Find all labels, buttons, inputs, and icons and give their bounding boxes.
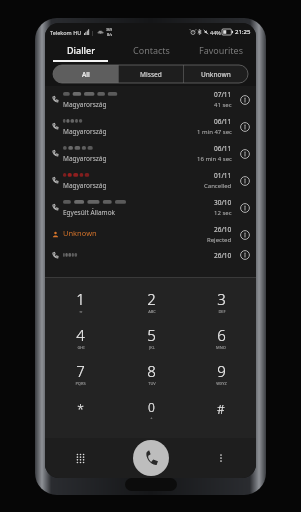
staticText: 07/11 xyxy=(214,90,232,99)
staticText: All xyxy=(82,70,90,79)
button[interactable]: * xyxy=(45,391,116,427)
staticText: 12 sec xyxy=(214,209,232,217)
button[interactable]: 5 xyxy=(116,319,186,355)
staticText: 21:25 xyxy=(235,28,251,36)
staticText: 01/11 xyxy=(214,171,232,180)
button[interactable]: Contacts xyxy=(116,40,186,60)
staticText: 06/11 xyxy=(214,117,232,126)
staticText: 1 xyxy=(76,289,85,309)
button[interactable]: Magyarország xyxy=(45,140,256,167)
staticText: JKL xyxy=(149,345,155,350)
staticText: PQRS xyxy=(75,381,86,386)
button[interactable]: Call details xyxy=(238,93,252,107)
button[interactable]: 6 xyxy=(186,319,256,355)
staticText: WXYZ xyxy=(216,381,227,386)
staticText: ∞ xyxy=(79,309,83,314)
staticText: Magyarország xyxy=(63,154,107,163)
staticText: Unknown xyxy=(63,228,97,238)
button[interactable]: Unknown xyxy=(45,221,256,248)
button[interactable]: 1 xyxy=(45,283,116,319)
button[interactable]: # xyxy=(186,391,256,427)
staticText: Rejected xyxy=(207,236,232,244)
staticText: 16 min 4 sec xyxy=(197,155,232,163)
staticText: 26/10 xyxy=(214,225,232,234)
button[interactable]: Magyarország xyxy=(45,86,256,113)
button[interactable]: All xyxy=(53,65,118,83)
staticText: 9 xyxy=(217,361,226,381)
button[interactable]: Call details xyxy=(238,201,252,215)
staticText: 2 xyxy=(147,289,156,309)
button[interactable]: Missed xyxy=(119,65,183,83)
button[interactable]: Egyesült Államok xyxy=(45,194,256,221)
staticText: 4 xyxy=(76,325,85,345)
staticText: GHI xyxy=(77,345,85,350)
staticText: Cancelled xyxy=(204,182,232,190)
staticText: Missed xyxy=(140,70,162,79)
staticText: MNO xyxy=(216,345,226,350)
button[interactable]: 2 xyxy=(116,283,186,319)
staticText: 6 xyxy=(217,325,226,345)
staticText: 06/11 xyxy=(214,144,232,153)
button[interactable]: 3 xyxy=(186,283,256,319)
staticText: # xyxy=(217,401,225,417)
button[interactable]: Dialler xyxy=(45,40,116,60)
button[interactable]: 4 xyxy=(45,319,116,355)
button[interactable]: Call details xyxy=(238,120,252,134)
staticText: 369 xyxy=(106,27,113,32)
staticText: Egyesült Államok xyxy=(63,208,116,217)
button[interactable]: 7 xyxy=(45,355,116,391)
staticText: Telekom HU xyxy=(50,29,82,36)
staticText: B/s xyxy=(107,32,113,37)
staticText: 0 xyxy=(148,399,155,415)
button[interactable]: 9 xyxy=(186,355,256,391)
staticText: Magyarország xyxy=(63,127,107,136)
button[interactable]: Call details xyxy=(238,174,252,188)
staticText: 7 xyxy=(76,361,85,381)
button[interactable]: Home xyxy=(125,478,177,491)
button[interactable]: Call details xyxy=(238,228,252,242)
staticText: Unknown xyxy=(201,70,231,79)
button[interactable]: 0 xyxy=(116,391,186,427)
staticText: TUV xyxy=(148,381,156,386)
button[interactable]: Magyarország xyxy=(45,113,256,140)
button[interactable]: Call details xyxy=(238,147,252,161)
staticText: Favourites xyxy=(199,44,243,56)
staticText: Magyarország xyxy=(63,181,107,190)
staticText: 8 xyxy=(147,361,156,381)
staticText: 3 xyxy=(217,289,226,309)
staticText: Magyarország xyxy=(63,100,107,109)
staticText: Dialler xyxy=(67,44,95,56)
button[interactable]: Keypad xyxy=(45,438,116,478)
staticText: 1 min 47 sec xyxy=(197,128,232,136)
button[interactable]: Call xyxy=(133,440,169,476)
staticText: 41 sec xyxy=(214,101,232,109)
button[interactable]: 26/10 xyxy=(45,248,256,262)
button[interactable]: Unknown xyxy=(184,65,248,83)
staticText: 26/10 xyxy=(214,251,232,260)
staticText: ABC xyxy=(148,309,156,314)
button[interactable]: More options xyxy=(186,438,256,478)
staticText: Contacts xyxy=(133,44,170,56)
button[interactable]: Favourites xyxy=(186,40,256,60)
staticText: * xyxy=(77,401,84,417)
staticText: 44% xyxy=(210,29,221,36)
button[interactable]: Magyarország xyxy=(45,167,256,194)
staticText: | xyxy=(91,29,95,36)
staticText: + xyxy=(150,415,153,420)
staticText: DEF xyxy=(218,309,226,314)
staticText: 30/10 xyxy=(214,198,232,207)
button[interactable]: 8 xyxy=(116,355,186,391)
staticText: 5 xyxy=(147,325,156,345)
